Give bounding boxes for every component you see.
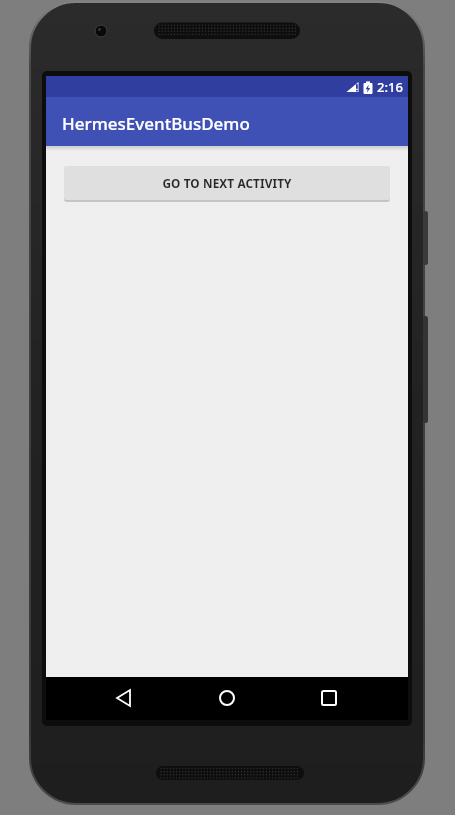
staticText: HermesEventBusDemo (62, 112, 250, 135)
staticText: GO TO NEXT ACTIVITY (162, 175, 292, 191)
button[interactable] (104, 678, 144, 718)
button[interactable] (207, 678, 247, 718)
staticText: 2:16 (377, 78, 403, 96)
button[interactable]: GO TO NEXT ACTIVITY (64, 166, 390, 200)
button[interactable] (309, 678, 349, 718)
